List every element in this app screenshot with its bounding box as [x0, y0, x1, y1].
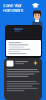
staticText: Homework: [3, 8, 23, 13]
staticText: Solve Your: [3, 4, 22, 8]
